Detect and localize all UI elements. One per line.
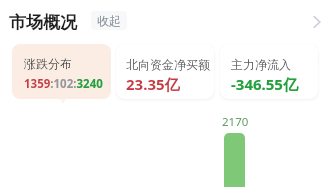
staticText: -346.55亿: [231, 74, 298, 94]
staticText: 1359:102:3240: [24, 76, 103, 92]
staticText: 主力净流入: [231, 57, 291, 72]
button[interactable]: 北向资金净买额: [116, 44, 214, 99]
staticText: 收起: [97, 13, 121, 28]
button[interactable]: 主力净流入: [220, 44, 318, 99]
staticText: 市场概况: [9, 12, 77, 33]
button[interactable]: 涨跌分布: [12, 44, 111, 99]
staticText: 23.35亿: [126, 74, 180, 94]
button[interactable]: 市场概况: [9, 12, 77, 33]
button[interactable]: 收起: [91, 11, 127, 30]
button[interactable]: More: [306, 11, 328, 33]
staticText: 北向资金净买额: [126, 57, 210, 72]
staticText: 涨跌分布: [24, 56, 72, 71]
staticText: 2170: [222, 114, 249, 130]
